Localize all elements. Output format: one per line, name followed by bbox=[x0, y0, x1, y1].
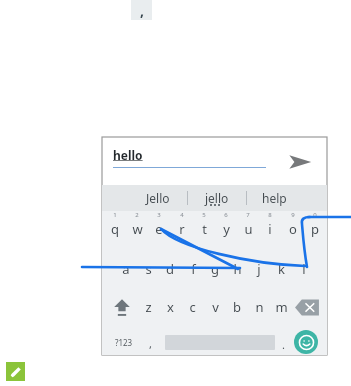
staticText: k bbox=[278, 260, 285, 278]
button[interactable]: w bbox=[126, 219, 148, 239]
staticText: 5 bbox=[202, 211, 206, 219]
staticText: p bbox=[311, 220, 319, 238]
button[interactable]: 8 bbox=[259, 205, 281, 225]
staticText: , bbox=[140, 1, 144, 20]
staticText: j bbox=[257, 260, 261, 278]
staticText: 6 bbox=[224, 211, 228, 219]
staticText: . bbox=[282, 337, 285, 352]
staticText: r bbox=[179, 220, 185, 238]
staticText: h bbox=[233, 260, 242, 278]
staticText: q bbox=[111, 220, 119, 238]
button[interactable]: Backspace bbox=[294, 298, 320, 317]
staticText: jello bbox=[205, 190, 229, 206]
staticText: hello bbox=[113, 147, 143, 163]
button[interactable]: e bbox=[148, 219, 170, 239]
button[interactable]: y bbox=[215, 219, 237, 239]
button[interactable]: m bbox=[270, 297, 292, 317]
button[interactable]: Comma key bbox=[131, 0, 152, 20]
button[interactable]: 7 bbox=[237, 205, 259, 225]
button[interactable]: , bbox=[139, 333, 161, 353]
staticText: m bbox=[275, 298, 288, 316]
button[interactable]: b bbox=[226, 297, 248, 317]
staticText: x bbox=[167, 298, 174, 316]
button[interactable]: k bbox=[270, 259, 292, 279]
button[interactable]: r bbox=[171, 219, 193, 239]
button[interactable]: jello bbox=[189, 185, 245, 211]
button[interactable]: Shift bbox=[109, 295, 135, 319]
button[interactable]: Edit bbox=[6, 362, 25, 381]
staticText: a bbox=[122, 260, 130, 278]
staticText: i bbox=[268, 220, 272, 238]
staticText: 9 bbox=[291, 211, 295, 219]
button[interactable]: q bbox=[104, 219, 126, 239]
button[interactable]: l bbox=[293, 259, 315, 279]
button[interactable]: 5 bbox=[193, 205, 215, 225]
staticText: v bbox=[212, 298, 219, 316]
button[interactable]: p bbox=[304, 219, 326, 239]
staticText: g bbox=[211, 260, 219, 278]
button[interactable]: a bbox=[115, 259, 137, 279]
button[interactable]: 4 bbox=[171, 205, 193, 225]
button[interactable]: Jello bbox=[130, 185, 186, 211]
button[interactable]: x bbox=[159, 297, 181, 317]
staticText: l bbox=[302, 260, 306, 278]
button[interactable]: Send bbox=[286, 148, 314, 176]
staticText: ?123 bbox=[115, 337, 133, 348]
staticText: Jello bbox=[146, 190, 170, 206]
staticText: u bbox=[244, 220, 253, 238]
button[interactable]: o bbox=[282, 219, 304, 239]
button[interactable]: 9 bbox=[282, 205, 304, 225]
staticText: o bbox=[289, 220, 297, 238]
staticText: b bbox=[233, 298, 241, 316]
staticText: y bbox=[223, 220, 230, 238]
button[interactable]: hello bbox=[102, 137, 327, 185]
button[interactable]: 1 bbox=[104, 205, 126, 225]
staticText: t bbox=[202, 220, 207, 238]
button[interactable]: g bbox=[204, 259, 226, 279]
staticText: 4 bbox=[180, 211, 184, 219]
button[interactable]: n bbox=[248, 297, 270, 317]
staticText: 7 bbox=[246, 211, 250, 219]
button[interactable]: i bbox=[259, 219, 281, 239]
staticText: 8 bbox=[268, 211, 272, 219]
button[interactable]: . bbox=[272, 334, 294, 354]
staticText: s bbox=[145, 260, 152, 278]
staticText: , bbox=[149, 336, 152, 351]
button[interactable]: 6 bbox=[215, 205, 237, 225]
staticText: 0 bbox=[313, 211, 317, 219]
button[interactable]: Emoji bbox=[294, 330, 318, 354]
button[interactable]: t bbox=[193, 219, 215, 239]
staticText: c bbox=[189, 298, 196, 316]
button[interactable]: u bbox=[237, 219, 259, 239]
button[interactable]: j bbox=[248, 259, 270, 279]
staticText: help bbox=[262, 190, 287, 206]
button[interactable]: 0 bbox=[304, 205, 326, 225]
staticText: 1 bbox=[113, 211, 117, 219]
button[interactable]: c bbox=[181, 297, 203, 317]
staticText: 2 bbox=[135, 211, 139, 219]
staticText: n bbox=[255, 298, 264, 316]
staticText: d bbox=[166, 260, 174, 278]
staticText: e bbox=[155, 220, 163, 238]
button[interactable]: s bbox=[137, 259, 159, 279]
staticText: f bbox=[191, 260, 196, 278]
button[interactable]: v bbox=[204, 297, 226, 317]
staticText: w bbox=[132, 220, 143, 238]
button[interactable]: h bbox=[226, 259, 248, 279]
button[interactable]: 3 bbox=[148, 205, 170, 225]
button[interactable]: 2 bbox=[126, 205, 148, 225]
staticText: z bbox=[145, 298, 152, 316]
button[interactable]: z bbox=[137, 297, 159, 317]
staticText: 3 bbox=[157, 211, 161, 219]
button[interactable]: d bbox=[159, 259, 181, 279]
button[interactable]: help bbox=[246, 185, 302, 211]
button[interactable]: ?123 bbox=[107, 333, 141, 351]
button[interactable]: f bbox=[182, 259, 204, 279]
